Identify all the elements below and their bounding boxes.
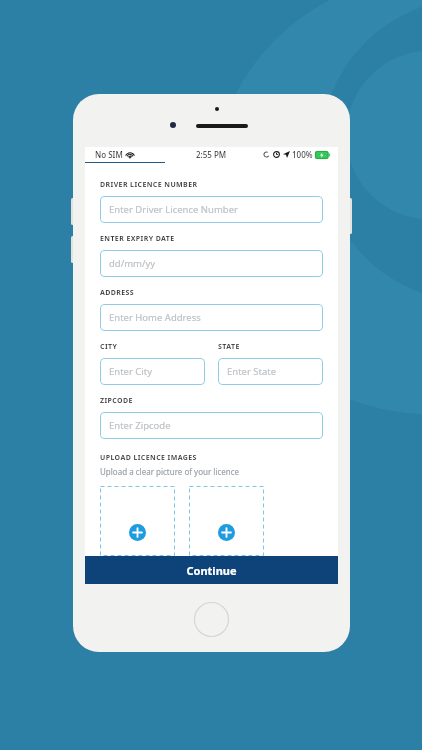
staticText: 100% [292, 149, 313, 160]
button[interactable]: Upload licence image [100, 486, 175, 556]
staticText: UPLOAD LICENCE IMAGES [100, 453, 197, 463]
staticText: dd/mm/yy [109, 257, 156, 270]
button[interactable]: Enter State [218, 358, 323, 385]
button[interactable]: Enter Driver Licence Number [100, 196, 323, 223]
staticText: Enter Home Address [109, 311, 201, 324]
button[interactable]: Enter City [100, 358, 205, 385]
staticText: Upload a clear picture of your licence [100, 466, 240, 477]
staticText: ENTER EXPIRY DATE [100, 234, 175, 244]
staticText: ADDRESS [100, 288, 135, 298]
staticText: STATE [218, 342, 240, 352]
staticText: Enter State [227, 365, 277, 378]
button[interactable]: Enter Zipcode [100, 412, 323, 439]
button[interactable]: Enter Home Address [100, 304, 323, 331]
staticText: CITY [100, 342, 118, 352]
button[interactable]: Upload licence image [189, 486, 264, 556]
button[interactable]: Continue [85, 556, 338, 584]
staticText: Enter City [109, 365, 153, 378]
button[interactable]: dd/mm/yy [100, 250, 323, 277]
staticText: Continue [186, 563, 237, 578]
staticText: Enter Driver Licence Number [109, 203, 238, 216]
staticText: No SIM [95, 149, 123, 160]
staticText: Enter Zipcode [109, 419, 171, 432]
staticText: 2:55 PM [196, 149, 227, 160]
staticText: ZIPCODE [100, 396, 133, 406]
staticText: DRIVER LICENCE NUMBER [100, 180, 198, 190]
